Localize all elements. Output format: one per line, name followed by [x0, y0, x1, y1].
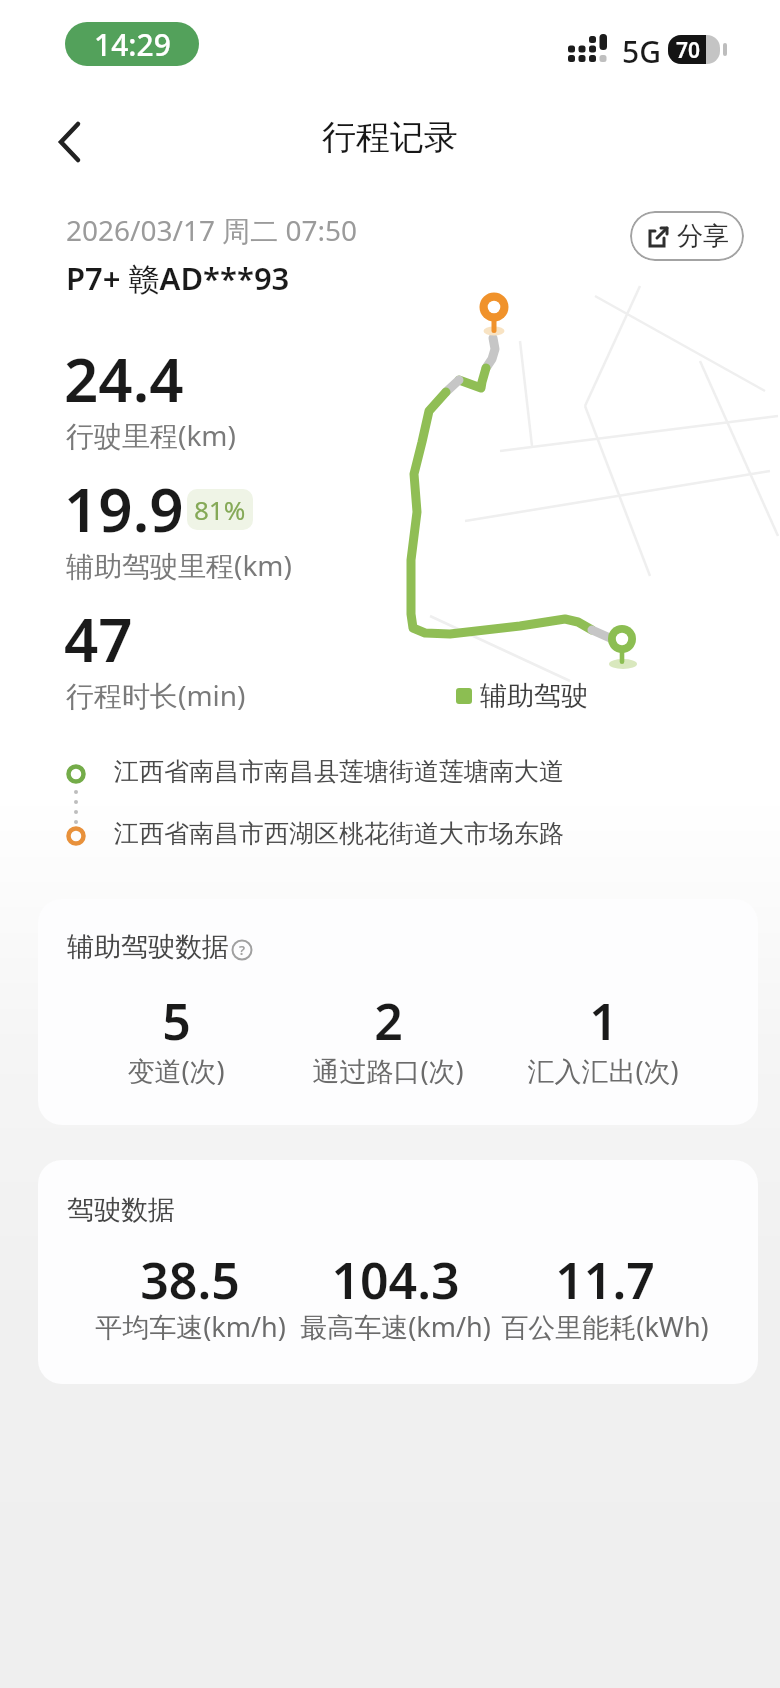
staticText: 19.9 — [64, 468, 184, 550]
staticText: 分享 — [677, 220, 729, 253]
staticText: 江西省南昌市西湖区桃花街道大市场东路 — [114, 818, 564, 849]
staticText: 14:29 — [94, 24, 171, 65]
staticText: 5 — [162, 987, 191, 1055]
staticText: 平均车速(km/h) — [95, 1308, 286, 1345]
staticText: 行程时长(min) — [66, 676, 246, 714]
button[interactable] — [40, 112, 100, 172]
staticText: 38.5 — [140, 1246, 240, 1314]
staticText: 104.3 — [331, 1246, 460, 1314]
staticText: 81% — [194, 492, 246, 527]
staticText: 11.7 — [555, 1246, 655, 1314]
staticText: 百公里能耗(kWh) — [501, 1308, 709, 1345]
staticText: 辅助驾驶 — [480, 679, 588, 713]
staticText: 驾驶数据 — [67, 1193, 175, 1227]
staticText: 行驶里程(km) — [66, 416, 236, 454]
staticText: 47 — [64, 598, 133, 680]
staticText: 24.4 — [64, 338, 184, 420]
staticText: 最高车速(km/h) — [300, 1308, 491, 1345]
staticText: 汇入汇出(次) — [527, 1052, 679, 1089]
staticText: P7+ 赣AD***93 — [66, 257, 290, 299]
staticText: 辅助驾驶数据 — [67, 930, 229, 964]
staticText: 辅助驾驶里程(km) — [66, 546, 292, 584]
staticText: 70 — [676, 36, 701, 65]
staticText: 变道(次) — [127, 1052, 225, 1089]
staticText: ? — [239, 941, 245, 959]
staticText: 5G — [622, 31, 661, 72]
staticText: 行程记录 — [322, 116, 458, 159]
button[interactable]: 分享 — [630, 211, 744, 261]
staticText: 通过路口(次) — [312, 1052, 464, 1089]
staticText: 2026/03/17 周二 07:50 — [66, 211, 358, 249]
staticText: 江西省南昌市南昌县莲塘街道莲塘南大道 — [114, 756, 564, 787]
staticText: 2 — [374, 987, 403, 1055]
staticText: 1 — [589, 987, 618, 1055]
button[interactable]: ? — [231, 939, 253, 961]
